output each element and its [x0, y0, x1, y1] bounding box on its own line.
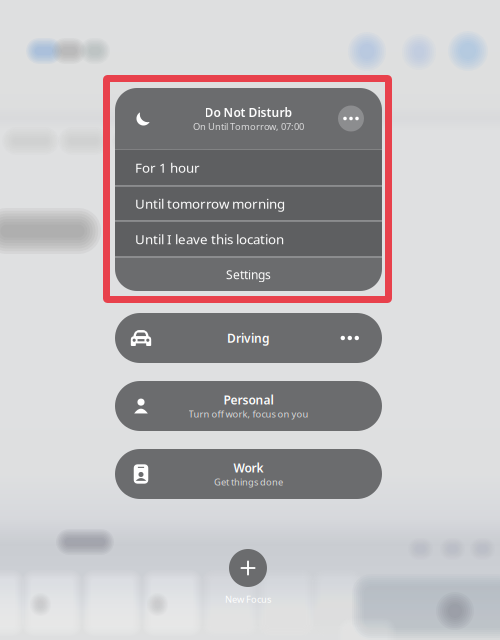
button[interactable]: Until tomorrow morning [115, 186, 382, 220]
staticText: Driving [227, 330, 270, 346]
staticText: On Until Tomorrow, 07:00 [193, 120, 304, 133]
button[interactable]: Work [115, 449, 382, 499]
staticText: Turn off work, focus on you [188, 408, 308, 420]
button[interactable]: For 1 hour [115, 149, 382, 185]
button[interactable]: New Focus [203, 549, 293, 605]
staticText: Until tomorrow morning [135, 195, 285, 212]
staticText: Do Not Disturb [204, 104, 292, 120]
staticText: Work [233, 460, 263, 476]
button[interactable]: Driving [115, 313, 382, 363]
button[interactable]: Personal [115, 381, 382, 431]
staticText: Until I leave this location [135, 230, 284, 248]
staticText: Get things done [214, 476, 283, 488]
button[interactable]: Until I leave this location [115, 221, 382, 256]
staticText: Personal [223, 392, 273, 408]
button[interactable]: Settings [115, 257, 382, 291]
staticText: Settings [226, 266, 271, 282]
button[interactable]: More options [338, 105, 364, 131]
staticText: For 1 hour [135, 159, 200, 176]
staticText: New Focus [225, 593, 271, 605]
